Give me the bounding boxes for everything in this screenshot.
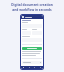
button[interactable]: Continue bbox=[22, 47, 42, 50]
staticText: and workflow in seconds bbox=[2, 8, 62, 12]
button[interactable]: Select option bbox=[22, 61, 42, 64]
staticText: Digital document creation bbox=[2, 3, 62, 7]
button[interactable]: App bar bbox=[21, 15, 43, 19]
